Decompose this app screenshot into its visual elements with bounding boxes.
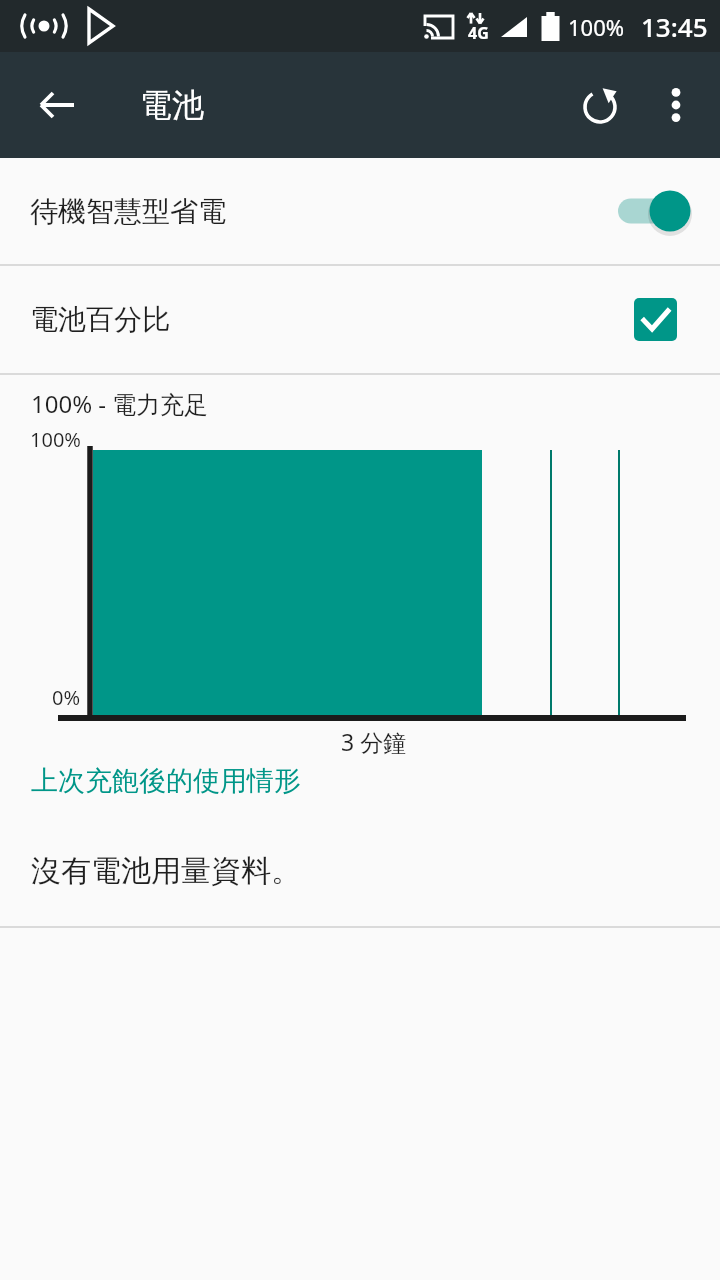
staticText: 13:45 xyxy=(641,9,708,44)
button[interactable]: 上次充飽後的使用情形 xyxy=(0,746,720,816)
staticText: 沒有電池用量資料。 xyxy=(31,852,301,890)
button[interactable]: Refresh xyxy=(562,67,638,143)
button[interactable]: Back xyxy=(21,69,93,141)
staticText: 電池 xyxy=(140,85,204,125)
staticText: 0% xyxy=(52,684,81,711)
staticText: 100% xyxy=(568,12,625,42)
button[interactable]: 電池百分比 xyxy=(0,266,720,373)
staticText: 100% xyxy=(30,426,81,453)
staticText: 待機智慧型省電 xyxy=(30,194,226,229)
staticText: 上次充飽後的使用情形 xyxy=(31,764,301,798)
staticText: 電池百分比 xyxy=(30,302,170,337)
staticText: 4G xyxy=(468,22,489,44)
staticText: 100% - 電力充足 xyxy=(31,387,209,420)
button[interactable]: More options xyxy=(638,67,714,143)
button[interactable]: 待機智慧型省電 xyxy=(0,158,720,264)
staticText: 3 分鐘 xyxy=(341,726,407,757)
